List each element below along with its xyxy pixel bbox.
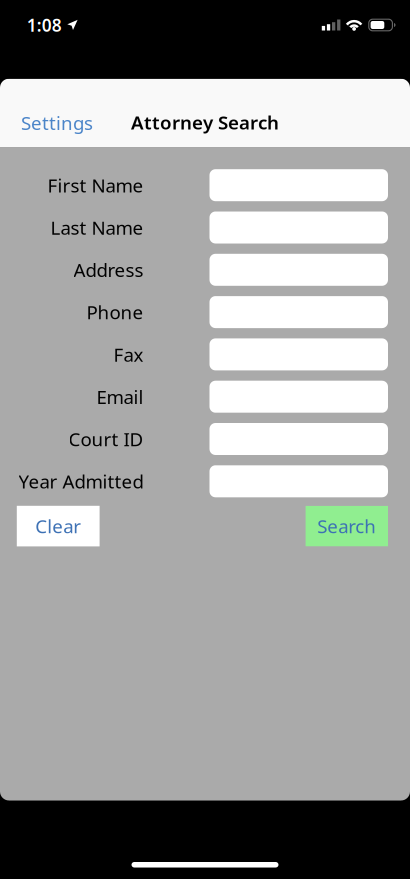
staticText: Last Name: [50, 215, 143, 240]
staticText: Search: [317, 514, 376, 538]
staticText: Address: [73, 257, 143, 282]
staticText: Settings: [21, 110, 93, 135]
textField[interactable]: Court ID: [209, 424, 388, 454]
textField[interactable]: Last Name: [209, 212, 388, 242]
textField[interactable]: First Name: [209, 170, 388, 200]
staticText: Court ID: [68, 427, 143, 451]
staticText: Clear: [35, 514, 81, 538]
staticText: Email: [96, 384, 143, 409]
staticText: Fax: [113, 342, 143, 367]
staticText: Phone: [86, 300, 143, 324]
button[interactable]: Settings: [13, 102, 101, 143]
staticText: Attorney Search: [131, 110, 279, 135]
staticText: First Name: [47, 173, 143, 198]
textField[interactable]: Address: [209, 255, 388, 285]
textField[interactable]: Fax: [209, 339, 388, 369]
staticText: 1:08: [27, 13, 62, 36]
staticText: Year Admitted: [18, 469, 143, 494]
textField[interactable]: Year Admitted: [209, 466, 388, 496]
button[interactable]: Search: [306, 506, 388, 546]
button[interactable]: Clear: [17, 506, 100, 546]
textField[interactable]: Phone: [209, 297, 388, 327]
textField[interactable]: Email: [209, 382, 388, 412]
